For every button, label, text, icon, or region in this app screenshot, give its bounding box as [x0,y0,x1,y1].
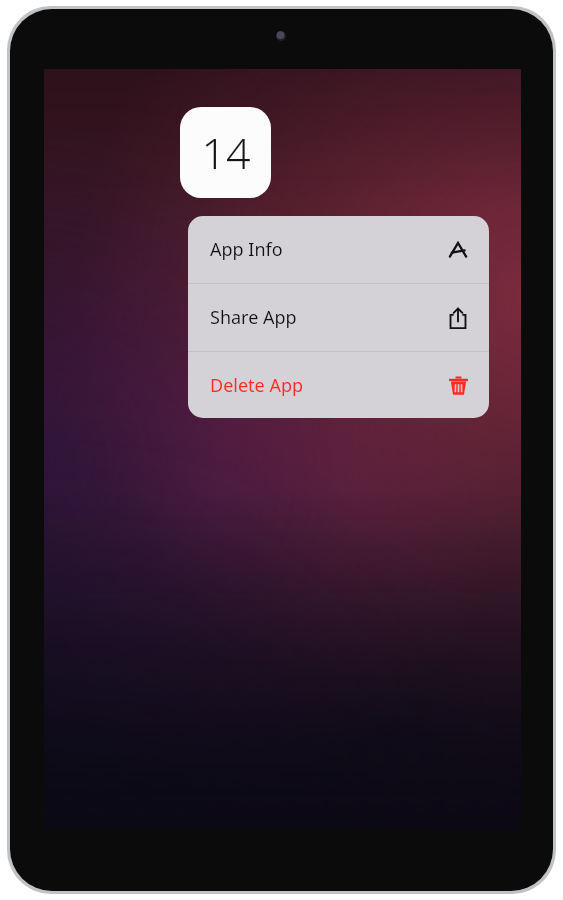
other: Share App [447,307,469,329]
staticText: App Info [210,237,447,262]
staticText: Share App [210,305,447,330]
other: Delete App [448,375,469,396]
button[interactable]: 14 [180,107,271,198]
staticText: 14 [201,123,251,182]
button[interactable]: Delete App [188,352,489,418]
other: App Info [447,239,469,261]
button[interactable]: App Info [188,216,489,283]
staticText: Delete App [210,373,448,398]
button[interactable]: Share App [188,284,489,351]
